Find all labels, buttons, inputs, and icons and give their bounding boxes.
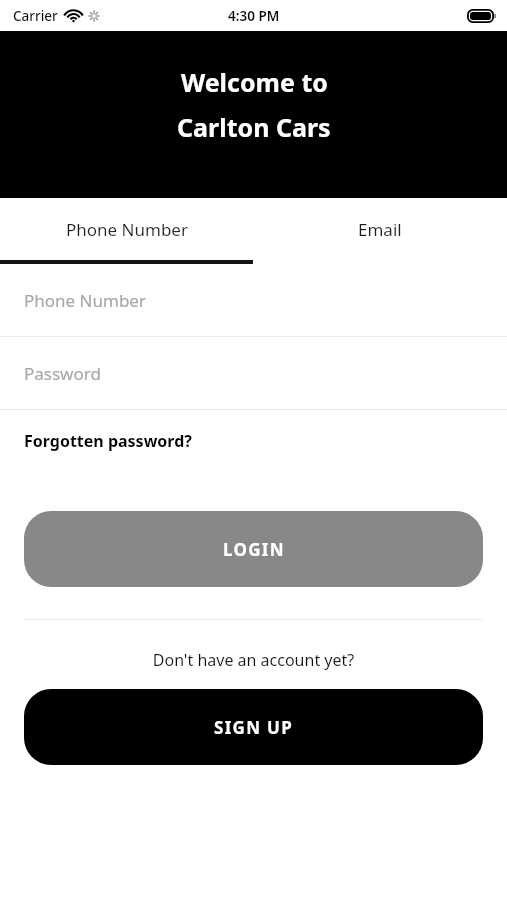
staticText: Password [24, 362, 101, 385]
staticText: Welcome to [181, 65, 328, 99]
button[interactable]: Password [0, 337, 507, 409]
button[interactable]: Phone Number [0, 198, 253, 260]
button[interactable]: Email [253, 198, 507, 260]
staticText: Phone Number [66, 218, 188, 241]
button[interactable]: LOGIN [24, 511, 483, 587]
button[interactable]: Forgotten password? [0, 410, 507, 471]
staticText: Carlton Cars [177, 110, 331, 144]
staticText: SIGN UP [214, 716, 294, 739]
staticText: 4:30 PM [228, 7, 280, 25]
staticText: Forgotten password? [24, 430, 192, 452]
staticText: Don't have an account yet? [0, 649, 507, 671]
staticText: LOGIN [223, 538, 285, 561]
button[interactable]: SIGN UP [24, 689, 483, 765]
staticText: Carrier [13, 7, 58, 25]
button[interactable]: Phone Number [0, 264, 507, 336]
staticText: Phone Number [24, 289, 146, 312]
staticText: Email [358, 218, 402, 241]
